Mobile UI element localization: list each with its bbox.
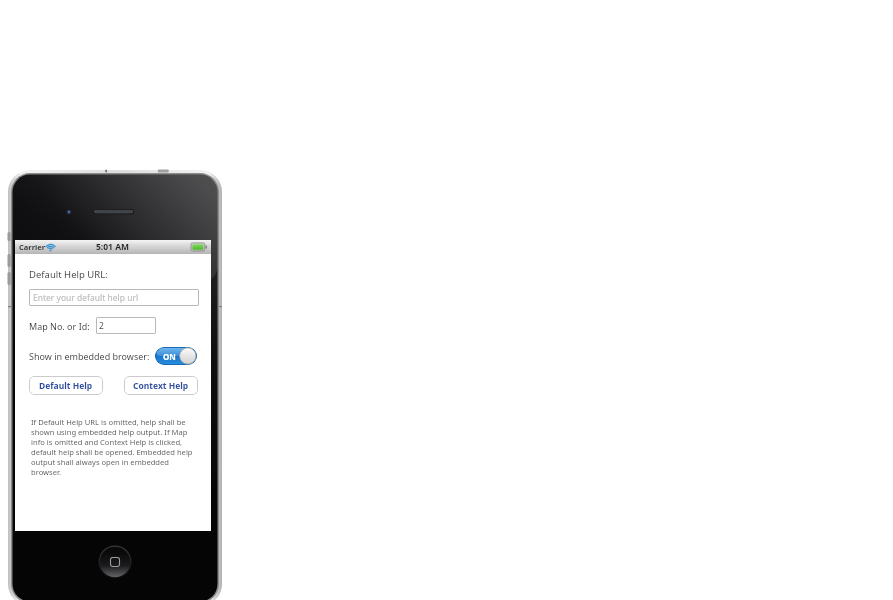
staticText: 5:01 AM xyxy=(96,241,130,253)
staticText: 2 xyxy=(99,320,104,332)
staticText: If Default Help URL is omitted, help sha… xyxy=(31,417,195,477)
button[interactable]: Context Help xyxy=(124,376,198,395)
button[interactable]: 2 xyxy=(96,317,156,334)
staticText: Map No. or Id: xyxy=(29,320,90,332)
staticText: Enter your default help url xyxy=(33,292,139,304)
button[interactable]: Show in embedded browser toggle, on xyxy=(155,347,197,365)
staticText: Default Help xyxy=(39,380,93,392)
staticText: Default Help URL: xyxy=(29,268,108,281)
staticText: ON xyxy=(163,351,176,362)
staticText: Context Help xyxy=(133,380,189,392)
staticText: Carrier xyxy=(19,242,46,252)
staticText: Show in embedded browser: xyxy=(29,350,150,362)
button[interactable]: Default Help xyxy=(29,376,103,395)
button[interactable]: Enter your default help url xyxy=(29,289,199,306)
